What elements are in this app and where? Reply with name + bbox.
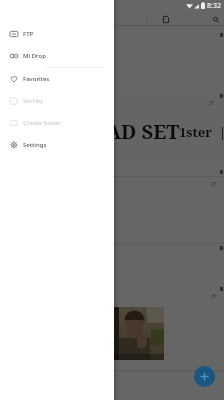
staticText: AD SET <box>106 118 180 145</box>
button[interactable]: Add <box>194 366 215 387</box>
button[interactable]: Sort by <box>0 90 114 112</box>
button[interactable]: Search <box>211 15 220 24</box>
staticText: 2f <box>209 100 214 107</box>
staticText: Favorites <box>23 75 50 83</box>
button[interactable]: Select <box>161 15 170 24</box>
staticText: 1ster | <box>179 123 224 141</box>
button[interactable]: Settings <box>0 134 114 156</box>
staticText: Settings <box>23 141 47 149</box>
staticText: Mi Drop <box>23 52 46 60</box>
staticText: 2f <box>211 181 216 188</box>
button[interactable]: Favorites <box>0 68 114 90</box>
staticText: Sort by <box>23 97 44 105</box>
staticText: Create folder <box>23 119 61 127</box>
button[interactable]: Create folder <box>0 112 114 134</box>
button[interactable]: Mi Drop <box>0 45 114 67</box>
button[interactable]: FTP <box>0 23 114 45</box>
staticText: 8:32 <box>207 1 221 11</box>
staticText: FTP <box>23 30 34 38</box>
staticText: 3f <box>211 293 216 300</box>
